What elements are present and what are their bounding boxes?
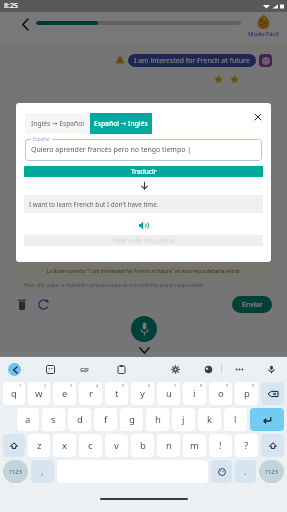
button[interactable]: s (42, 408, 65, 431)
staticText: z (37, 439, 42, 452)
staticText: 2 (44, 383, 47, 388)
button[interactable]: Collapse (137, 343, 151, 357)
staticText: 1 (19, 383, 22, 388)
staticText: d (77, 413, 83, 426)
button[interactable]: t (105, 382, 128, 405)
button[interactable]: a (17, 408, 39, 431)
button[interactable]: Traducir (24, 166, 263, 177)
button[interactable]: ! (209, 434, 232, 457)
button[interactable]: Settings (168, 362, 182, 376)
staticText: h (155, 413, 161, 426)
staticText: Español → Inglés (94, 119, 148, 128)
staticText: q (11, 387, 17, 400)
staticText: La frase correcta "I am interested for F… (12, 268, 275, 275)
button[interactable]: Emoji reaction (259, 54, 272, 67)
staticText: 8:25 (4, 1, 18, 11)
staticText: , (41, 466, 44, 477)
button[interactable]: Back (13, 12, 37, 36)
staticText: 9 (226, 383, 229, 388)
button[interactable]: d (68, 408, 91, 431)
staticText: m (190, 439, 199, 452)
staticText: 5 (122, 383, 125, 388)
button[interactable]: h (146, 408, 169, 431)
staticText: 4 (96, 383, 99, 388)
button[interactable]: b (131, 434, 154, 457)
button[interactable]: r (79, 382, 102, 405)
button[interactable]: l (224, 408, 247, 431)
button[interactable]: Español → Inglés (90, 113, 152, 134)
button[interactable]: . (235, 460, 256, 483)
staticText: ? (244, 439, 249, 452)
staticText: g (129, 413, 135, 426)
button[interactable]: Voice input (264, 362, 278, 376)
button[interactable]: Repeat (35, 296, 51, 312)
button[interactable]: g (120, 408, 143, 431)
staticText: b (140, 439, 146, 452)
button[interactable]: v (105, 434, 128, 457)
staticText: 0 (252, 383, 255, 388)
button[interactable]: j (172, 408, 195, 431)
staticText: t (115, 387, 119, 400)
button[interactable]: q (3, 382, 25, 405)
button[interactable]: Back (8, 363, 21, 376)
button[interactable]: enter (250, 408, 284, 431)
button[interactable]: Stickers (43, 362, 57, 376)
staticText: Quiero aprender francés pero no tengo ti… (31, 145, 192, 155)
staticText: ! (219, 439, 222, 452)
button[interactable]: z (28, 434, 50, 457)
staticText: i (193, 387, 196, 400)
button[interactable]: p (235, 382, 258, 405)
staticText: ?123 (265, 468, 278, 476)
staticText: Usar esta respuesta (113, 236, 175, 245)
button[interactable]: y (131, 382, 154, 405)
button[interactable]: GIF (78, 362, 92, 376)
staticText: y (140, 387, 145, 400)
button[interactable]: i (183, 382, 206, 405)
button[interactable]: Emoji (211, 460, 232, 483)
button[interactable]: c (79, 434, 102, 457)
button[interactable]: Modo Fácil (243, 12, 283, 38)
button[interactable]: k (198, 408, 221, 431)
button[interactable]: Clipboard (114, 362, 128, 376)
button[interactable]: Usar esta respuesta (24, 235, 263, 246)
staticText: r (89, 387, 93, 400)
staticText: 3 (70, 383, 73, 388)
button[interactable]: u (157, 382, 180, 405)
button[interactable]: m (183, 434, 206, 457)
button[interactable]: Close (250, 109, 265, 124)
button[interactable]: o (209, 382, 232, 405)
staticText: Inglés → Español (31, 119, 84, 128)
button[interactable]: More options (232, 362, 246, 376)
button[interactable]: n (157, 434, 180, 457)
button[interactable]: w (28, 382, 50, 405)
button[interactable]: x (53, 434, 76, 457)
staticText: s (51, 413, 56, 426)
button[interactable]: shift2 (261, 434, 284, 457)
button[interactable]: Microphone (131, 316, 157, 342)
button[interactable]: f (94, 408, 117, 431)
button[interactable]: ? (235, 434, 258, 457)
button[interactable]: I am interested for French at future (128, 54, 256, 67)
button[interactable]: Play audio (136, 217, 152, 233)
button[interactable]: ?123 (3, 460, 28, 483)
staticText: x (62, 439, 68, 452)
staticText: a (25, 413, 31, 426)
staticText: e (62, 387, 68, 400)
staticText: j (182, 413, 185, 426)
button[interactable]: e (53, 382, 76, 405)
staticText: o (218, 387, 224, 400)
staticText: Enviar (242, 300, 263, 310)
button[interactable]: Themes (201, 362, 215, 376)
staticText: I want to learn French but I don't have … (29, 200, 159, 209)
button[interactable]: Enviar (232, 296, 272, 313)
button[interactable]: shift (3, 434, 25, 457)
button[interactable]: Inglés → Español (25, 113, 90, 134)
staticText: l (234, 413, 237, 426)
staticText: f (104, 413, 108, 426)
button[interactable]: del (261, 382, 284, 405)
button[interactable]: ?123 (259, 460, 284, 483)
button[interactable]: , (31, 460, 54, 483)
staticText: Español (33, 136, 50, 142)
button[interactable]: Delete (14, 296, 30, 312)
